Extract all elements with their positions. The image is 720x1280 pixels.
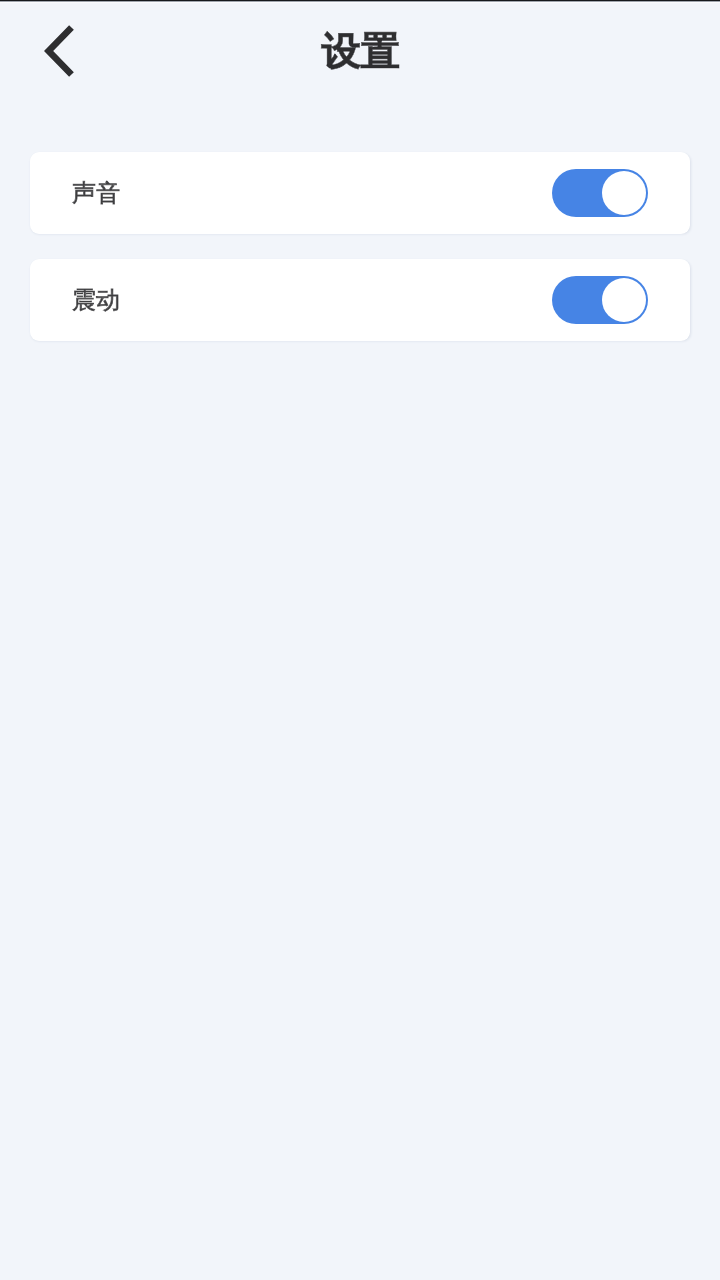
staticText: 设置	[321, 27, 399, 76]
button[interactable]: 震动开关	[552, 276, 648, 324]
button[interactable]: 声音	[30, 152, 690, 234]
button[interactable]: 声音开关	[552, 169, 648, 217]
staticText: 设置	[321, 27, 399, 76]
staticText: 震动	[72, 285, 120, 315]
button[interactable]: 震动	[30, 259, 690, 341]
staticText: 声音	[72, 178, 120, 208]
button[interactable]: Back	[30, 22, 88, 80]
staticText: 声音	[72, 178, 120, 208]
staticText: 震动	[72, 285, 120, 315]
